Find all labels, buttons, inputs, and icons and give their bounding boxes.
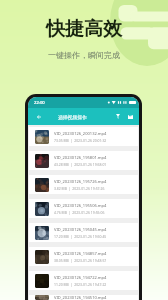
staticText: 17.20 MB | 2023-01-26 19:50:45 — [54, 234, 107, 239]
button[interactable]: VID_20230126_195506.mp4 — [29, 199, 138, 218]
staticText: VID_20230126_195801.mp4 — [54, 155, 107, 161]
staticText: VID_20230126_195045.mp4 — [54, 227, 107, 233]
staticText: VID_20230126_194722.mp4 — [54, 275, 107, 281]
staticText: 3.82 MB | 2023-01-26 19:57:26 — [54, 186, 105, 191]
staticText: 11.20 MB | 2023-01-26 19:47:22 — [54, 282, 107, 287]
button[interactable]: VID_20230126_195726.mp4 — [29, 175, 138, 194]
button[interactable]: VID_20230126_200132.mp4 — [29, 127, 138, 146]
staticText: 43.28 MB | 2023-01-26 19:58:01 — [54, 162, 107, 167]
button[interactable]: VID_20230126_194857.mp4 — [29, 247, 138, 266]
staticText: VID_20230126_194510.mp4 — [54, 295, 107, 300]
staticText: 22:00 — [34, 100, 45, 106]
staticText: VID_20230126_194857.mp4 — [54, 251, 107, 257]
staticText: VID_20230126_200132.mp4 — [54, 131, 107, 137]
staticText: 一键操作，瞬间完成 — [48, 50, 120, 60]
staticText: VID_20230126_195726.mp4 — [54, 179, 107, 185]
staticText: VID_20230126_195506.mp4 — [54, 203, 107, 209]
button[interactable]: VID_20230126_194510.mp4 — [29, 295, 138, 300]
button[interactable]: Filter — [113, 108, 123, 125]
button[interactable]: VID_20230126_195801.mp4 — [29, 151, 138, 170]
button[interactable]: Videos — [125, 108, 136, 125]
staticText: 选择视频操作 — [58, 114, 87, 120]
staticText: 73.05 MB | 2023-01-26 20:01:32 — [54, 138, 107, 143]
staticText: 4.76 MB | 2023-01-26 19:55:06 — [54, 210, 105, 215]
button[interactable]: Back — [32, 108, 46, 125]
button[interactable]: VID_20230126_195045.mp4 — [29, 223, 138, 242]
staticText: 38.05 MB | 2023-01-26 19:48:57 — [54, 258, 107, 263]
button[interactable]: VID_20230126_194722.mp4 — [29, 271, 138, 290]
staticText: 快捷高效 — [46, 17, 122, 41]
